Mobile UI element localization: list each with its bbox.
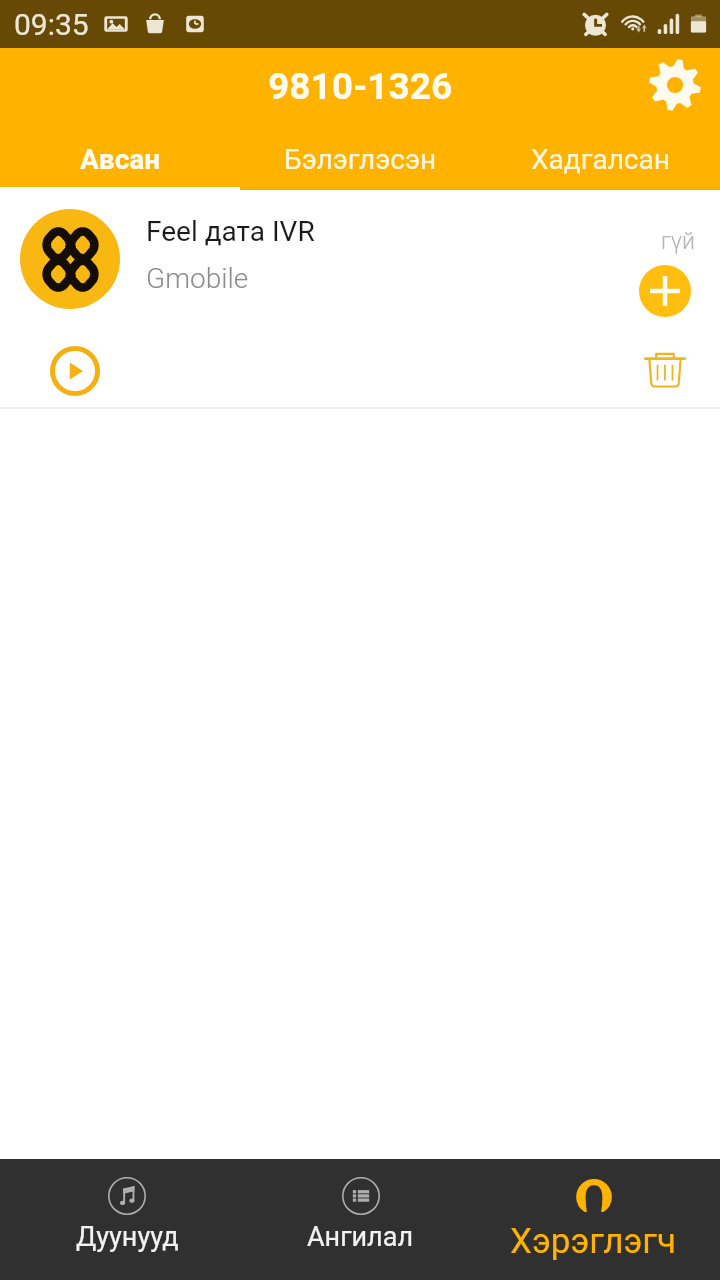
button[interactable]: Play bbox=[47, 343, 103, 399]
staticText: Хадгалсан bbox=[531, 143, 670, 176]
button[interactable]: Settings bbox=[645, 55, 705, 115]
button[interactable]: Дуунууд bbox=[10, 1159, 244, 1280]
staticText: Дуунууд bbox=[76, 1221, 179, 1253]
staticText: Feel дата IVR bbox=[146, 215, 315, 248]
button[interactable]: Бэлэглэсэн bbox=[240, 135, 480, 183]
staticText: 9810-1326 bbox=[268, 65, 453, 108]
staticText: гүй bbox=[661, 228, 695, 255]
staticText: Хэрэглэгч bbox=[510, 1221, 677, 1262]
staticText: Авсан bbox=[80, 143, 161, 176]
staticText: Gmobile bbox=[146, 262, 249, 295]
staticText: Ангилал bbox=[307, 1221, 414, 1253]
button[interactable]: Ангилал bbox=[244, 1159, 477, 1280]
button[interactable]: Delete bbox=[640, 345, 690, 395]
button[interactable]: Add bbox=[639, 265, 691, 317]
button[interactable]: Хадгалсан bbox=[480, 135, 720, 183]
staticText: Бэлэглэсэн bbox=[284, 143, 437, 176]
button[interactable]: Авсан bbox=[0, 135, 240, 183]
staticText: 09:35 bbox=[14, 7, 89, 42]
button[interactable]: Хэрэглэгч bbox=[477, 1159, 710, 1280]
